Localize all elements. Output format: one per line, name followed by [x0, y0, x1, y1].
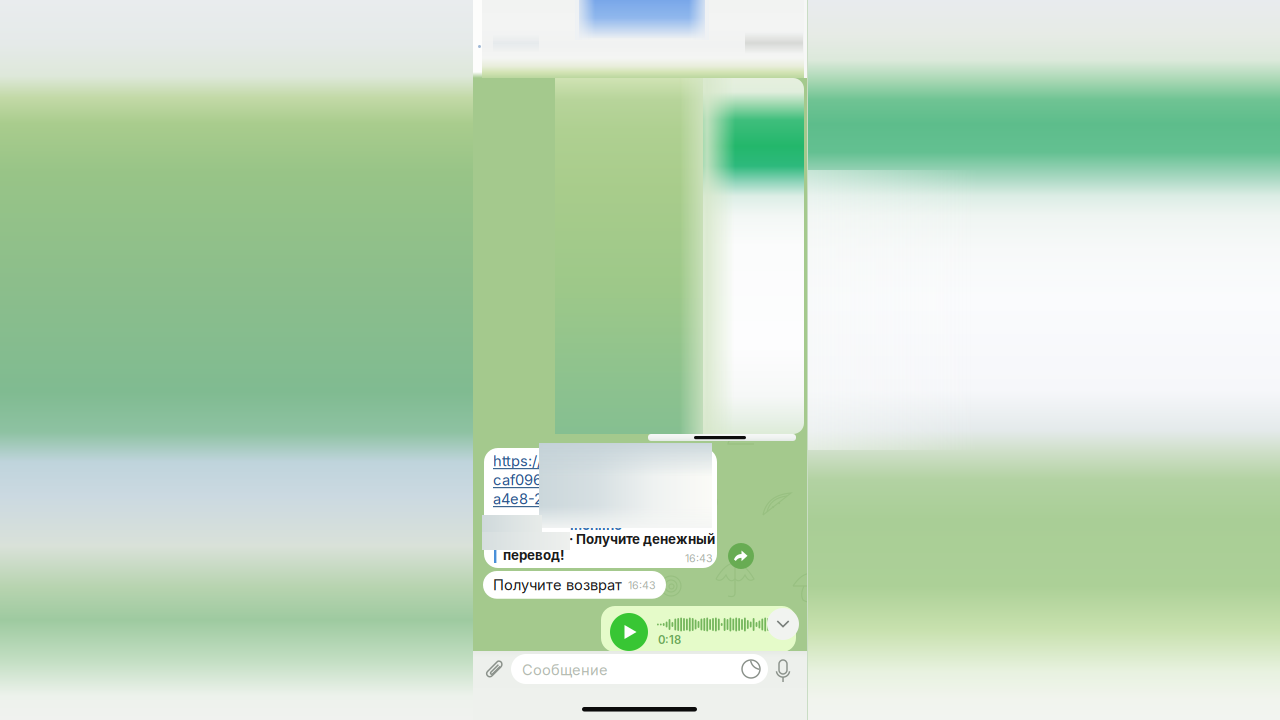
staticText: caf096 [493, 471, 542, 489]
staticText: il.online [570, 517, 622, 533]
button[interactable]: Stickers [739, 657, 763, 681]
button[interactable]: Play voice message [610, 613, 648, 651]
button[interactable]: Record voice message [770, 654, 796, 684]
staticText: перевод! [503, 547, 565, 563]
button[interactable]: Scroll to bottom [767, 608, 799, 640]
staticText: 16:43 [685, 552, 713, 565]
button[interactable]: Forward [728, 543, 754, 569]
staticText: Получите возврат [493, 576, 622, 594]
staticText: 16:43 [628, 579, 656, 592]
staticText: · Получите денежный [569, 531, 715, 547]
staticText: a4e8-2 [493, 490, 543, 508]
staticText: Сообщение [522, 661, 608, 679]
staticText: https:// [493, 452, 542, 470]
staticText: 0:18 [658, 633, 681, 647]
button[interactable]: Attach [480, 654, 510, 684]
